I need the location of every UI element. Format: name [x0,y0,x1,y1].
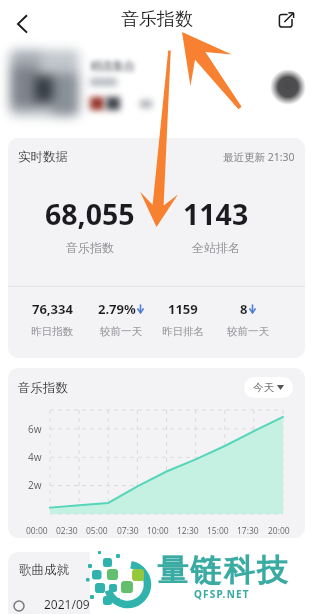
staticText: QFSP.NET [194,587,250,601]
staticText: 量链科技 [157,551,290,590]
staticText: 20:00 [268,525,290,537]
staticText: 音乐指数 [66,240,114,255]
staticText: 07:30 [117,525,139,537]
staticText: 6w [28,422,42,436]
button[interactable] [270,69,306,105]
staticText: 精选集合 [90,58,135,73]
staticText: 最近更新 21:30 [223,150,295,164]
staticText: 歌曲成就 [19,562,69,578]
staticText: 2021/09, [44,596,93,612]
staticText: 15:00 [207,525,229,537]
staticText: 76,334 [32,300,73,318]
staticText: 12:30 [177,525,199,537]
staticText: 17:30 [237,525,259,537]
staticText: 10:00 [147,525,169,537]
staticText: 全站排名 [192,240,240,255]
staticText: 68,055 [45,195,135,234]
staticText: 00:00 [26,525,48,537]
staticText: 昨日排名 [162,325,204,338]
staticText: 05:00 [86,525,108,537]
staticText: 1143 [183,195,249,234]
staticText: 昨日指数 [31,325,73,338]
staticText: 4w [28,450,42,464]
staticText: 较前一天 [227,325,269,338]
staticText: 今天 [253,381,274,394]
button[interactable] [6,8,36,38]
staticText: 2w [28,478,42,492]
staticText: 较前一天 [100,325,142,338]
staticText: 音乐指数 [18,380,68,396]
staticText: 8 [240,300,248,318]
button[interactable] [276,10,296,30]
staticText: 02:30 [56,525,78,537]
staticText: 音乐指数 [121,8,193,31]
staticText: 2.79% [98,300,136,318]
button[interactable]: 今天 [253,377,284,398]
staticText: 1159 [168,300,198,318]
staticText: 实时数据 [18,149,68,165]
